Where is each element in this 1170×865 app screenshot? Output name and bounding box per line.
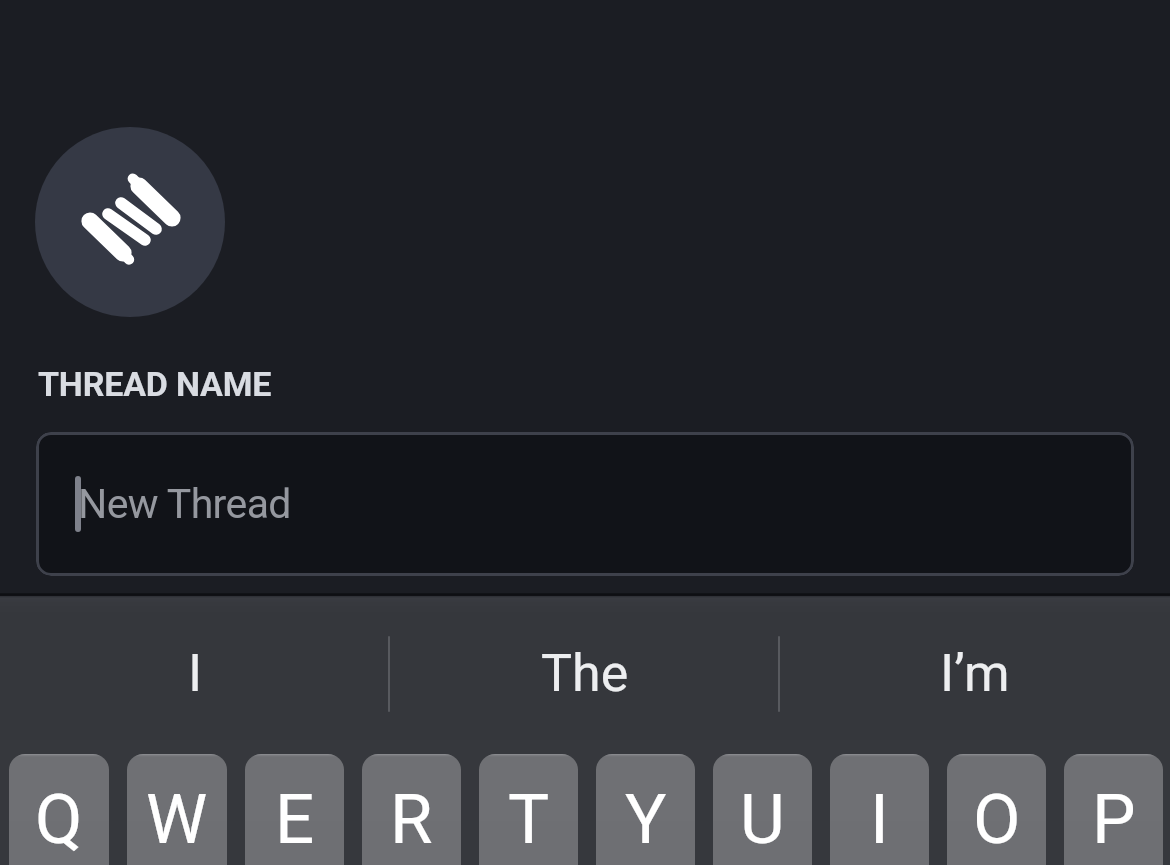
button[interactable]: P	[1064, 754, 1163, 865]
staticText: THREAD NAME	[38, 364, 272, 404]
button[interactable]: R	[362, 754, 461, 865]
button[interactable]: Q	[9, 754, 109, 865]
staticText: W	[146, 779, 208, 860]
button[interactable]: New Thread	[36, 432, 1134, 576]
button[interactable]: W	[127, 754, 227, 865]
button[interactable]: Thread photo	[35, 127, 225, 317]
staticText: U	[740, 779, 785, 860]
button[interactable]: O	[947, 754, 1046, 865]
staticText: Y	[625, 779, 667, 860]
staticText: The	[541, 643, 629, 704]
staticText: I	[188, 643, 203, 704]
staticText: E	[275, 779, 315, 860]
button[interactable]: E	[245, 754, 344, 865]
button[interactable]: U	[713, 754, 812, 865]
staticText: P	[1092, 779, 1136, 860]
button[interactable]: I’m	[780, 593, 1170, 754]
staticText: O	[973, 779, 1021, 860]
staticText: R	[390, 779, 433, 860]
button[interactable]: The	[390, 593, 780, 754]
button[interactable]: T	[479, 754, 578, 865]
button[interactable]: I	[0, 593, 390, 754]
button[interactable]: I	[830, 754, 929, 865]
staticText: T	[508, 779, 550, 860]
staticText: Q	[35, 779, 83, 860]
staticText: I	[870, 779, 889, 860]
staticText: New Thread	[78, 480, 291, 528]
staticText: I’m	[940, 643, 1010, 704]
button[interactable]: Y	[596, 754, 695, 865]
